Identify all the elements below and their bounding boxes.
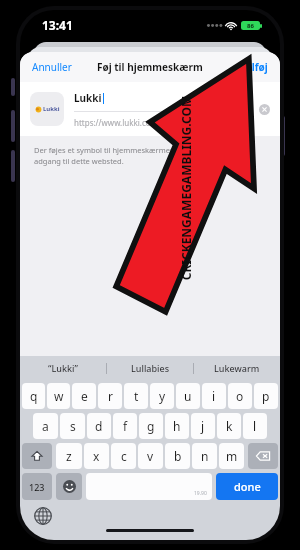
button[interactable]: 123: [22, 473, 52, 500]
staticText: w: [54, 388, 64, 404]
staticText: Lukki: [74, 91, 102, 105]
button[interactable]: v: [138, 443, 163, 469]
button[interactable]: b: [165, 443, 190, 469]
staticText: 86: [247, 22, 254, 30]
button[interactable]: m: [219, 443, 244, 469]
staticText: p: [262, 388, 270, 404]
button[interactable]: d: [87, 413, 111, 439]
button[interactable]: Emoji: [56, 473, 82, 500]
button[interactable]: j: [191, 413, 215, 439]
staticText: t: [134, 388, 139, 404]
button[interactable]: q: [22, 383, 45, 409]
staticText: s: [70, 418, 76, 434]
staticText: m: [226, 448, 238, 464]
staticText: j: [201, 418, 205, 434]
staticText: c: [121, 448, 127, 464]
staticText: Føj til hjemmeskærm: [97, 60, 203, 74]
staticText: Lullabies: [131, 362, 170, 374]
staticText: f: [123, 418, 128, 434]
staticText: 19.90: [194, 490, 207, 497]
button[interactable]: y: [150, 383, 174, 409]
staticText: done: [234, 479, 261, 494]
button[interactable]: g: [139, 413, 163, 439]
staticText: z: [66, 448, 72, 464]
button[interactable]: Ryd tekst: [259, 104, 270, 115]
staticText: Der føjes et symbol til hjemmeskærmen, s…: [34, 145, 266, 166]
button[interactable]: a: [33, 413, 58, 439]
staticText: g: [147, 418, 155, 434]
button[interactable]: e: [72, 383, 96, 409]
button[interactable]: x: [84, 443, 109, 469]
staticText: v: [147, 448, 154, 464]
button[interactable]: c: [111, 443, 136, 469]
button[interactable]: Lukewarm: [194, 356, 280, 380]
button[interactable]: n: [192, 443, 217, 469]
staticText: q: [30, 388, 38, 404]
button[interactable]: Annuller: [32, 60, 72, 74]
staticText: o: [236, 388, 244, 404]
staticText: n: [201, 448, 209, 464]
staticText: k: [226, 418, 233, 434]
button[interactable]: z: [56, 443, 82, 469]
button[interactable]: Tilføj: [243, 60, 268, 74]
staticText: “Lukki”: [48, 362, 78, 374]
staticText: u: [184, 388, 192, 404]
staticText: 123: [29, 481, 45, 493]
button[interactable]: f: [113, 413, 137, 439]
staticText: Lukki: [43, 105, 60, 113]
staticText: x: [93, 448, 100, 464]
button[interactable]: Mellemrum: [86, 473, 212, 500]
staticText: Lukewarm: [214, 362, 260, 374]
staticText: y: [159, 388, 166, 404]
staticText: CRICKENGAMEGAMBLING.COM: [177, 95, 193, 280]
button[interactable]: s: [60, 413, 85, 439]
staticText: https://www.lukki.com/?utm_source=sms: [74, 117, 229, 128]
button[interactable]: t: [124, 383, 148, 409]
button[interactable]: u: [176, 383, 200, 409]
staticText: a: [42, 418, 49, 434]
staticText: i: [212, 388, 216, 404]
staticText: b: [174, 448, 182, 464]
staticText: l: [253, 418, 257, 434]
button[interactable]: Lullabies: [107, 356, 193, 380]
staticText: d: [95, 418, 103, 434]
button[interactable]: Skift tastatursprog: [34, 507, 52, 525]
button[interactable]: l: [243, 413, 267, 439]
button[interactable]: p: [254, 383, 278, 409]
button[interactable]: h: [165, 413, 189, 439]
button[interactable]: r: [98, 383, 122, 409]
button[interactable]: Skift: [22, 443, 52, 469]
staticText: 13:41: [42, 17, 73, 33]
button[interactable]: “Lukki”: [20, 356, 106, 380]
button[interactable]: done: [216, 473, 278, 500]
staticText: r: [108, 388, 113, 404]
button[interactable]: w: [47, 383, 70, 409]
button[interactable]: Slet: [248, 443, 278, 469]
staticText: e: [81, 388, 88, 404]
button[interactable]: i: [202, 383, 226, 409]
staticText: h: [173, 418, 181, 434]
button[interactable]: k: [217, 413, 241, 439]
button[interactable]: o: [228, 383, 252, 409]
